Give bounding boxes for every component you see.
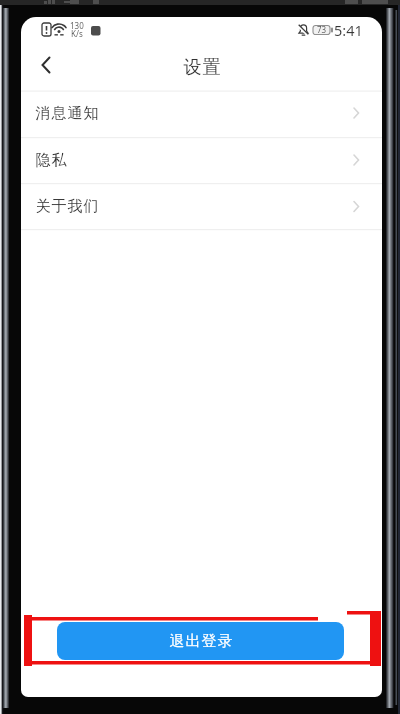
- staticText: 73: [317, 24, 327, 35]
- button[interactable]: 关于我们: [21, 184, 382, 229]
- staticText: 5:41: [334, 20, 363, 40]
- staticText: 退出登录: [169, 632, 233, 651]
- button[interactable]: 消息通知: [21, 91, 382, 136]
- button[interactable]: [31, 51, 67, 79]
- button[interactable]: 隐私: [21, 138, 382, 183]
- staticText: 130: [70, 20, 84, 31]
- staticText: K/s: [71, 28, 83, 39]
- staticText: 隐私: [35, 151, 67, 170]
- staticText: 关于我们: [35, 197, 99, 216]
- staticText: 设置: [183, 56, 221, 79]
- button[interactable]: 退出登录: [57, 622, 344, 660]
- staticText: 消息通知: [35, 104, 99, 123]
